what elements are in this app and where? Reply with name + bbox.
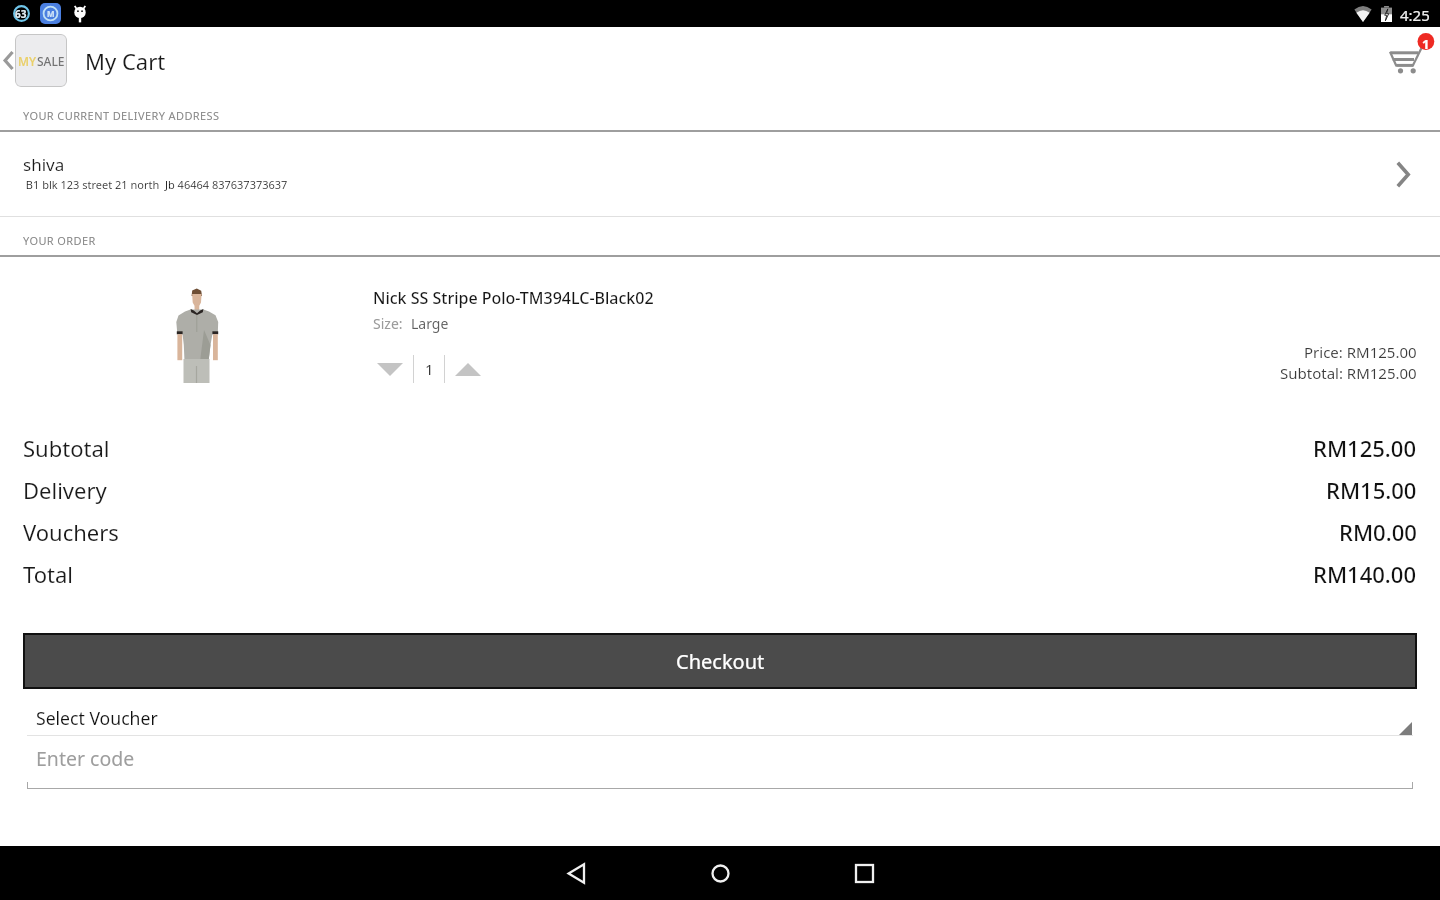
staticText: M: [47, 8, 55, 19]
button[interactable]: Recent apps: [828, 846, 900, 900]
staticText: MY: [18, 53, 37, 69]
staticText: Size:: [373, 314, 403, 333]
other: Change address: [1396, 161, 1410, 188]
staticText: Select Voucher: [36, 706, 158, 730]
staticText: YOUR ORDER: [23, 233, 96, 248]
staticText: Price: RM125.00: [1304, 342, 1417, 362]
staticText: shiva: [23, 153, 65, 176]
staticText: Subtotal: [23, 433, 110, 463]
staticText: Delivery: [23, 475, 107, 505]
button[interactable]: Select Voucher: [27, 697, 1413, 736]
staticText: RM0.00: [1339, 517, 1417, 547]
button[interactable]: Cart: [1378, 31, 1436, 83]
button[interactable]: Nick SS Stripe Polo-TM394LC-Black02: [0, 257, 1440, 412]
button[interactable]: Enter code: [27, 740, 1413, 789]
staticText: SALE: [37, 53, 65, 69]
button[interactable]: shiva: [0, 132, 1440, 216]
staticText: Checkout: [676, 648, 765, 675]
staticText: RM125.00: [1313, 433, 1417, 463]
staticText: 1: [425, 359, 434, 379]
staticText: My Cart: [85, 46, 166, 76]
staticText: 4:25: [1400, 5, 1430, 25]
staticText: RM15.00: [1326, 475, 1417, 505]
button[interactable]: Back: [540, 846, 612, 900]
staticText: Subtotal: RM125.00: [1280, 363, 1417, 383]
staticText: B1 blk 123 street 21 north Jb 46464 8376…: [23, 177, 288, 192]
staticText: Enter code: [36, 745, 135, 772]
button[interactable]: Checkout: [23, 633, 1417, 689]
staticText: Large: [411, 314, 449, 333]
button[interactable]: Increase quantity: [454, 354, 482, 383]
staticText: 63: [15, 7, 27, 21]
staticText: Vouchers: [23, 517, 119, 547]
staticText: RM140.00: [1313, 559, 1417, 589]
staticText: Nick SS Stripe Polo-TM394LC-Black02: [373, 287, 654, 309]
button[interactable]: Up: [0, 34, 67, 87]
button[interactable]: Decrease quantity: [376, 354, 404, 383]
staticText: YOUR CURRENT DELIVERY ADDRESS: [23, 108, 220, 123]
staticText: Total: [23, 559, 73, 589]
staticText: 1: [1422, 35, 1430, 53]
button[interactable]: Home: [684, 846, 756, 900]
